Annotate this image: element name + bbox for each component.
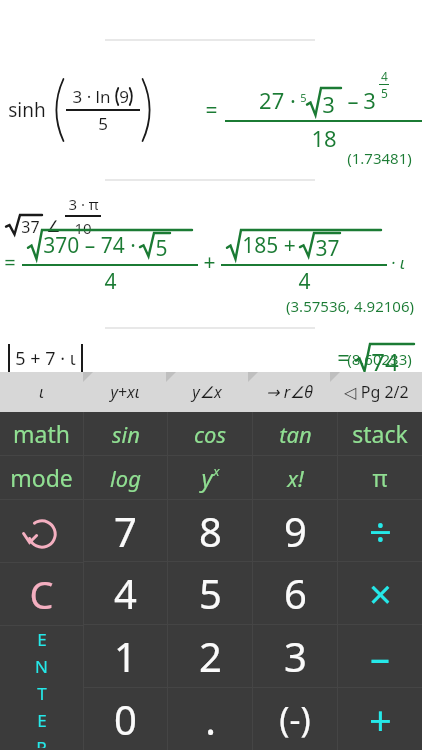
button[interactable]: 5: [168, 562, 252, 624]
staticText: 3: [363, 85, 376, 115]
staticText: 4: [114, 566, 137, 620]
staticText: cos: [194, 419, 226, 449]
staticText: 3 · ln: [72, 85, 111, 108]
staticText: =: [337, 342, 350, 368]
staticText: +: [203, 248, 216, 277]
button[interactable]: –: [338, 625, 422, 687]
staticText: 0: [114, 692, 137, 746]
button[interactable]: cos: [168, 412, 252, 455]
staticText: –: [370, 629, 390, 683]
button[interactable]: y∠x: [166, 372, 248, 412]
staticText: T: [37, 682, 47, 705]
staticText: log: [110, 463, 141, 493]
staticText: → r∠θ: [266, 381, 313, 403]
staticText: ÷: [369, 504, 392, 558]
button[interactable]: y+xι: [83, 372, 166, 412]
staticText: sin: [112, 419, 140, 449]
staticText: 185 +: [242, 231, 296, 260]
staticText: 6: [284, 566, 307, 620]
button[interactable]: 8: [168, 500, 252, 561]
staticText: π: [372, 462, 388, 493]
button[interactable]: math: [0, 412, 83, 455]
staticText: x: [213, 462, 220, 480]
staticText: (-): [279, 696, 311, 742]
button[interactable]: 4: [84, 562, 167, 624]
staticText: 5: [98, 112, 108, 135]
button[interactable]: .: [168, 688, 252, 750]
staticText: 9: [119, 85, 129, 108]
staticText: 5: [199, 566, 222, 620]
staticText: 1: [114, 629, 137, 683]
button[interactable]: tan: [253, 412, 337, 455]
staticText: R: [36, 736, 47, 748]
button[interactable]: 1: [84, 625, 167, 687]
button[interactable]: Clear: [0, 563, 83, 625]
staticText: 4: [104, 267, 117, 296]
button[interactable]: 7: [84, 500, 167, 561]
staticText: C: [29, 568, 54, 620]
staticText: stack: [352, 418, 408, 449]
staticText: (1.73481): [347, 148, 412, 168]
button[interactable]: 9: [253, 500, 337, 561]
staticText: y: [201, 461, 213, 494]
staticText: =: [4, 249, 16, 276]
staticText: N: [35, 655, 48, 678]
staticText: 4: [381, 68, 388, 84]
staticText: E: [37, 709, 47, 732]
button[interactable]: ÷: [338, 500, 422, 561]
button[interactable]: log: [84, 456, 167, 499]
staticText: 3: [322, 89, 335, 119]
staticText: 10: [74, 218, 92, 238]
staticText: sinh: [8, 97, 46, 123]
button[interactable]: ×: [338, 562, 422, 624]
staticText: ι: [39, 381, 44, 403]
staticText: 37: [315, 234, 340, 263]
staticText: (8.60233): [347, 349, 412, 369]
button[interactable]: stack: [338, 412, 422, 455]
button[interactable]: π: [338, 456, 422, 499]
button[interactable]: ◁ Pg 2/2: [330, 372, 422, 412]
staticText: 27 ·: [259, 85, 296, 115]
staticText: 18: [311, 123, 337, 153]
button[interactable]: 0: [84, 688, 167, 750]
staticText: y∠x: [192, 381, 222, 403]
button[interactable]: x!: [253, 456, 337, 499]
staticText: 74: [371, 345, 399, 372]
button[interactable]: +: [338, 688, 422, 750]
staticText: ∠: [46, 217, 61, 236]
button[interactable]: 6: [253, 562, 337, 624]
staticText: 9: [284, 504, 307, 558]
staticText: 7: [114, 504, 137, 558]
button[interactable]: → r∠θ: [248, 372, 330, 412]
staticText: –: [347, 85, 359, 115]
staticText: 37: [21, 216, 40, 238]
staticText: x!: [287, 463, 304, 493]
button[interactable]: Undo: [0, 500, 83, 562]
staticText: ×: [369, 566, 392, 620]
staticText: 3 · π: [68, 194, 99, 214]
button[interactable]: Enter: [0, 626, 83, 750]
button[interactable]: sin: [84, 412, 167, 455]
staticText: 3: [284, 629, 307, 683]
staticText: mode: [10, 462, 73, 493]
button[interactable]: ι: [0, 372, 83, 412]
staticText: (3.57536, 4.92106): [286, 296, 414, 316]
staticText: tan: [279, 419, 312, 449]
staticText: y+xι: [110, 381, 140, 403]
staticText: 5: [155, 234, 168, 263]
staticText: · ι: [391, 251, 405, 274]
staticText: 8: [199, 504, 222, 558]
staticText: +: [369, 692, 392, 746]
staticText: math: [13, 418, 70, 449]
staticText: E: [37, 628, 47, 651]
staticText: 4: [298, 267, 311, 296]
button[interactable]: 2: [168, 625, 252, 687]
staticText: 5: [300, 90, 307, 105]
button[interactable]: yˣ: [168, 456, 252, 499]
staticText: 5 + 7 · ι: [15, 346, 76, 371]
staticText: .: [205, 692, 216, 746]
staticText: =: [205, 96, 218, 125]
button[interactable]: mode: [0, 456, 83, 499]
button[interactable]: 3: [253, 625, 337, 687]
button[interactable]: (-): [253, 688, 337, 750]
